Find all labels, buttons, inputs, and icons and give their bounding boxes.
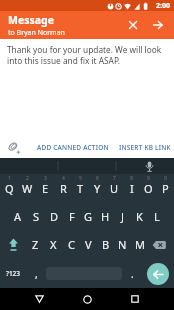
button[interactable]: S: [27, 202, 45, 230]
button[interactable]: C: [62, 230, 80, 259]
button[interactable]: A: [9, 202, 27, 230]
button[interactable]: N: [114, 230, 131, 259]
button[interactable]: W: [18, 174, 36, 202]
staticText: S: [33, 209, 40, 224]
staticText: J: [121, 209, 125, 224]
staticText: L: [154, 209, 160, 224]
staticText: P: [162, 181, 169, 196]
staticText: U: [110, 181, 119, 196]
staticText: 5: [79, 175, 82, 182]
button[interactable]: K: [131, 202, 148, 230]
staticText: X: [50, 237, 57, 252]
button[interactable]: V: [80, 230, 97, 259]
button[interactable]: Q: [0, 174, 18, 202]
staticText: W: [22, 181, 33, 196]
button[interactable]: [142, 259, 174, 288]
button[interactable]: Z: [26, 230, 44, 259]
button[interactable]: Y: [89, 174, 106, 202]
button[interactable]: T: [72, 174, 89, 202]
staticText: 9: [147, 175, 150, 182]
button[interactable]: [5, 139, 21, 155]
button[interactable]: R: [54, 174, 72, 202]
staticText: C: [68, 237, 75, 252]
button[interactable]: P: [157, 174, 174, 202]
staticText: B: [102, 237, 110, 252]
staticText: 8: [130, 175, 133, 182]
staticText: 2: [26, 175, 29, 182]
staticText: K: [136, 209, 143, 224]
button[interactable]: B: [97, 230, 114, 259]
staticText: ADD CANNED ACTION: [37, 143, 109, 152]
staticText: M: [135, 237, 145, 252]
button[interactable]: [28, 288, 50, 310]
staticText: V: [85, 237, 92, 252]
staticText: 3: [44, 175, 47, 182]
button[interactable]: M: [131, 230, 148, 259]
button[interactable]: I: [123, 174, 140, 202]
button[interactable]: O: [140, 174, 157, 202]
staticText: 4: [62, 175, 65, 182]
staticText: INSERT KB LINK: [119, 143, 171, 152]
staticText: ,: [35, 267, 38, 281]
staticText: Q: [5, 181, 14, 196]
button[interactable]: U: [106, 174, 123, 202]
staticText: Thank you for your update. We will look …: [7, 44, 169, 66]
button[interactable]: .: [122, 259, 142, 288]
staticText: E: [42, 181, 49, 196]
button[interactable]: D: [45, 202, 63, 230]
button[interactable]: [76, 288, 98, 310]
staticText: Message: [8, 13, 54, 27]
button[interactable]: INSERT KB LINK: [119, 143, 171, 152]
staticText: D: [50, 209, 59, 224]
staticText: F: [69, 209, 75, 224]
button[interactable]: [0, 230, 26, 259]
button[interactable]: L: [148, 202, 165, 230]
staticText: ?123: [6, 269, 21, 278]
staticText: 1: [8, 175, 11, 182]
button[interactable]: [148, 15, 168, 35]
button[interactable]: [148, 230, 174, 259]
button[interactable]: J: [114, 202, 131, 230]
staticText: 6: [96, 175, 99, 182]
button[interactable]: E: [36, 174, 54, 202]
staticText: 2:00: [156, 1, 170, 11]
staticText: to Bryan Norman: [8, 28, 65, 38]
staticText: A: [14, 209, 22, 224]
staticText: O: [144, 181, 153, 196]
staticText: Y: [94, 181, 101, 196]
staticText: .: [131, 267, 134, 281]
button[interactable]: [142, 159, 157, 174]
staticText: N: [118, 237, 127, 252]
staticText: 0: [164, 175, 167, 182]
button[interactable]: [46, 259, 122, 288]
staticText: H: [101, 209, 110, 224]
button[interactable]: X: [44, 230, 62, 259]
staticText: 7: [113, 175, 116, 182]
button[interactable]: G: [80, 202, 97, 230]
button[interactable]: ?123: [0, 259, 26, 288]
button[interactable]: ,: [26, 259, 46, 288]
button[interactable]: [123, 15, 143, 35]
button[interactable]: ADD CANNED ACTION: [37, 143, 109, 152]
button[interactable]: [124, 288, 146, 310]
staticText: Z: [32, 237, 39, 252]
staticText: G: [84, 209, 93, 224]
staticText: I: [130, 181, 134, 196]
button[interactable]: F: [63, 202, 80, 230]
staticText: R: [60, 181, 67, 196]
button[interactable]: H: [97, 202, 114, 230]
staticText: T: [77, 181, 84, 196]
